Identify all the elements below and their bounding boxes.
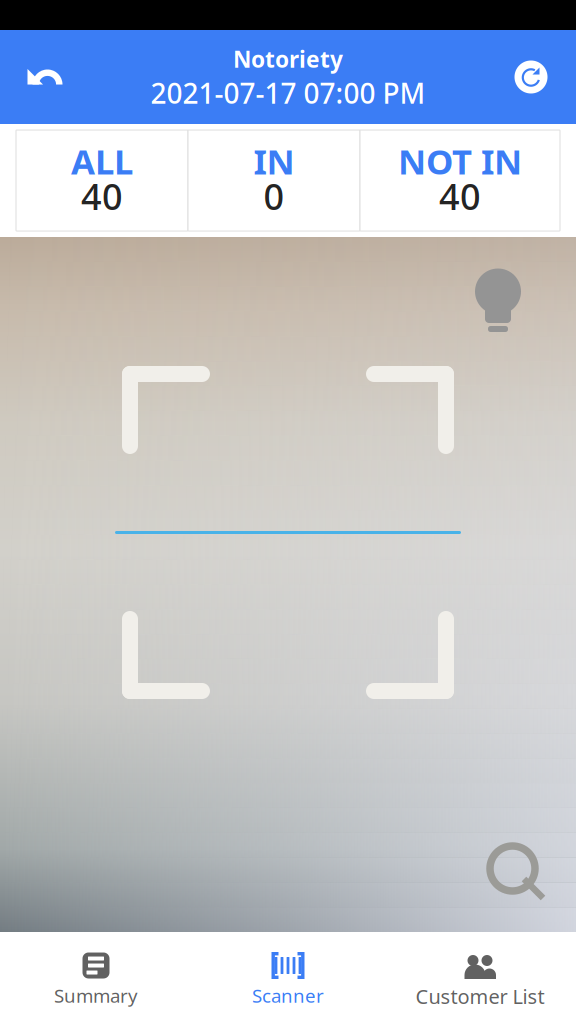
button[interactable]: Zoom <box>490 846 549 905</box>
button[interactable]: ALL <box>16 130 188 231</box>
staticText: Summary <box>54 983 138 1008</box>
staticText: NOT IN <box>398 138 522 184</box>
staticText: 40 <box>439 172 481 220</box>
button[interactable]: Toggle flashlight <box>474 272 522 332</box>
button[interactable]: IN <box>188 130 360 231</box>
button[interactable]: Back <box>0 30 90 124</box>
button[interactable]: Summary <box>0 932 192 1024</box>
button[interactable]: Refresh <box>486 30 576 124</box>
button[interactable]: Customer List <box>384 932 576 1024</box>
button[interactable]: Scanner <box>192 932 384 1024</box>
staticText: Scanner <box>252 983 324 1008</box>
staticText: 2021-07-17 07:00 PM <box>150 74 425 112</box>
staticText: Notoriety <box>233 44 343 74</box>
staticText: IN <box>253 138 294 184</box>
button[interactable]: NOT IN <box>360 130 560 231</box>
staticText: 40 <box>81 172 123 220</box>
staticText: 0 <box>263 172 284 220</box>
staticText: ALL <box>71 138 133 184</box>
staticText: Customer List <box>415 983 544 1010</box>
